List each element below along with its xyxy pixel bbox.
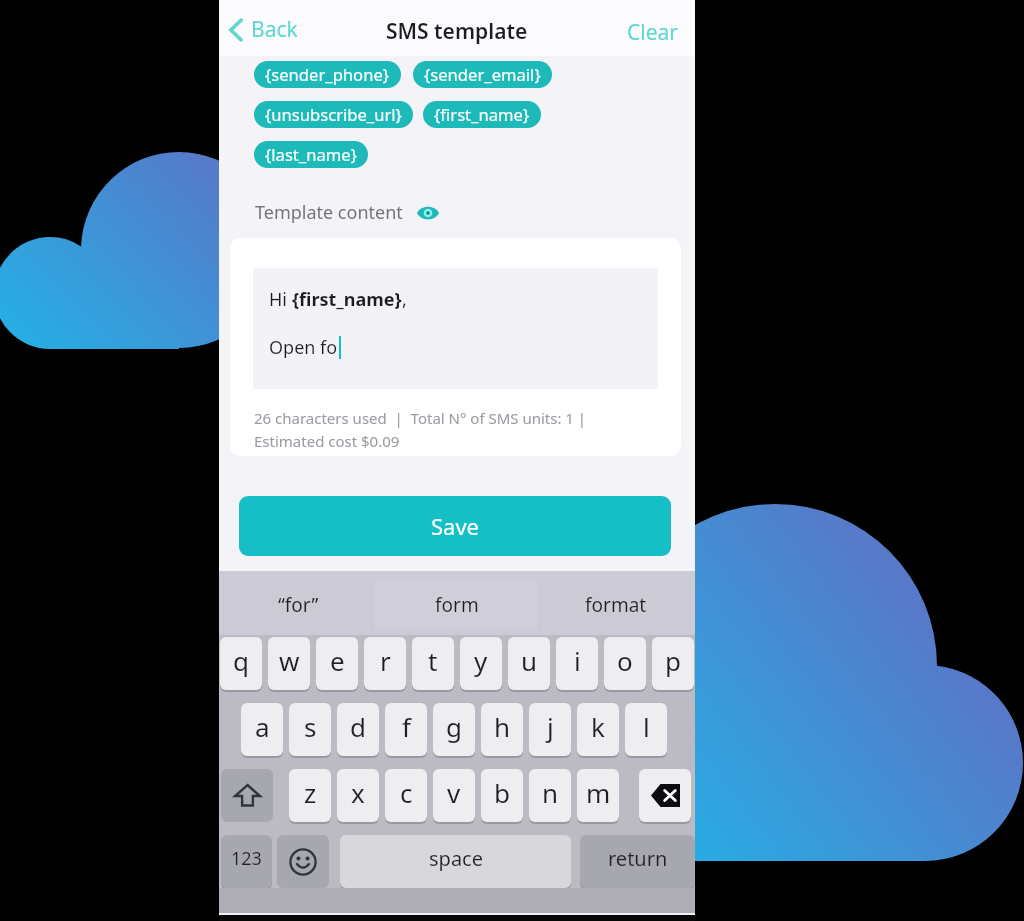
button[interactable]: w bbox=[268, 637, 310, 690]
staticText: f bbox=[402, 709, 411, 744]
staticText: q bbox=[233, 643, 249, 678]
button[interactable]: u bbox=[508, 637, 550, 690]
button[interactable]: g bbox=[433, 703, 475, 756]
staticText: {unsubscribe_url} bbox=[265, 103, 402, 126]
button[interactable]: {sender_email} bbox=[413, 61, 552, 88]
staticText: {sender_email} bbox=[424, 63, 541, 86]
button[interactable]: b bbox=[481, 769, 523, 822]
staticText: s bbox=[304, 709, 317, 744]
staticText: , bbox=[402, 287, 407, 312]
staticText: y bbox=[474, 643, 488, 678]
staticText: Open fo bbox=[269, 335, 338, 360]
button[interactable]: f bbox=[385, 703, 427, 756]
button[interactable]: p bbox=[652, 637, 694, 690]
button[interactable]: c bbox=[385, 769, 427, 822]
staticText: Save bbox=[431, 511, 480, 541]
staticText: p bbox=[665, 643, 681, 678]
staticText: space bbox=[429, 845, 483, 872]
button[interactable]: Preview bbox=[416, 201, 440, 225]
button[interactable]: 123 bbox=[221, 835, 272, 888]
button[interactable]: d bbox=[337, 703, 379, 756]
button[interactable]: {sender_phone} bbox=[254, 61, 401, 88]
staticText: k bbox=[591, 709, 605, 744]
button[interactable]: form bbox=[377, 573, 536, 637]
button[interactable]: Clear bbox=[623, 14, 682, 51]
button[interactable]: e bbox=[316, 637, 358, 690]
staticText: j bbox=[547, 709, 554, 744]
button[interactable]: n bbox=[529, 769, 571, 822]
staticText: 123 bbox=[231, 846, 262, 871]
staticText: l bbox=[643, 709, 650, 744]
button[interactable]: y bbox=[460, 637, 502, 690]
staticText: v bbox=[447, 775, 461, 810]
button[interactable]: z bbox=[289, 769, 331, 822]
button[interactable]: {unsubscribe_url} bbox=[254, 101, 413, 128]
staticText: o bbox=[617, 643, 633, 678]
staticText: b bbox=[494, 775, 510, 810]
staticText: e bbox=[330, 643, 345, 678]
button[interactable]: Save bbox=[239, 496, 671, 556]
button[interactable]: o bbox=[604, 637, 646, 690]
button[interactable]: v bbox=[433, 769, 475, 822]
button[interactable]: Shift bbox=[221, 769, 273, 822]
staticText: t bbox=[428, 643, 438, 678]
button[interactable]: r bbox=[364, 637, 406, 690]
staticText: Back bbox=[251, 15, 298, 44]
button[interactable]: Backspace bbox=[639, 769, 691, 822]
button[interactable]: Back bbox=[224, 12, 302, 47]
staticText: format bbox=[585, 592, 647, 618]
staticText: h bbox=[494, 709, 511, 744]
staticText: c bbox=[400, 775, 413, 810]
button[interactable]: h bbox=[481, 703, 523, 756]
button[interactable]: s bbox=[289, 703, 331, 756]
button[interactable]: “for” bbox=[219, 573, 377, 637]
button[interactable]: a bbox=[241, 703, 283, 756]
staticText: form bbox=[435, 592, 479, 618]
staticText: d bbox=[350, 709, 366, 744]
button[interactable]: format bbox=[536, 573, 695, 637]
staticText: r bbox=[380, 643, 391, 678]
staticText: g bbox=[446, 709, 462, 744]
staticText: u bbox=[521, 643, 538, 678]
staticText: i bbox=[574, 643, 581, 678]
button[interactable]: m bbox=[577, 769, 619, 822]
button[interactable]: k bbox=[577, 703, 619, 756]
staticText: Hi bbox=[269, 287, 292, 312]
staticText: Template content bbox=[255, 200, 403, 225]
button[interactable]: {last_name} bbox=[254, 141, 368, 168]
staticText: return bbox=[608, 845, 668, 872]
staticText: Estimated cost $0.09 bbox=[254, 431, 400, 451]
button[interactable]: q bbox=[220, 637, 262, 690]
staticText: {sender_phone} bbox=[265, 63, 390, 86]
button[interactable]: t bbox=[412, 637, 454, 690]
button[interactable]: l bbox=[625, 703, 667, 756]
staticText: n bbox=[542, 775, 559, 810]
button[interactable]: {first_name} bbox=[423, 101, 541, 128]
button[interactable]: return bbox=[580, 835, 695, 888]
staticText: x bbox=[351, 775, 365, 810]
staticText: {last_name} bbox=[265, 143, 357, 166]
staticText: w bbox=[279, 643, 300, 678]
staticText: 26 characters used | Total N° of SMS uni… bbox=[254, 408, 587, 428]
staticText: {first_name} bbox=[292, 287, 402, 312]
button[interactable]: space bbox=[340, 835, 571, 888]
button[interactable]: i bbox=[556, 637, 598, 690]
staticText: Clear bbox=[627, 18, 678, 47]
button[interactable]: Emoji keyboard bbox=[277, 835, 329, 888]
staticText: z bbox=[304, 775, 317, 810]
staticText: a bbox=[255, 709, 270, 744]
staticText: {first_name} bbox=[434, 103, 530, 126]
staticText: SMS template bbox=[386, 17, 528, 46]
staticText: “for” bbox=[278, 592, 319, 618]
button[interactable]: x bbox=[337, 769, 379, 822]
button[interactable]: j bbox=[529, 703, 571, 756]
staticText: m bbox=[586, 775, 611, 810]
